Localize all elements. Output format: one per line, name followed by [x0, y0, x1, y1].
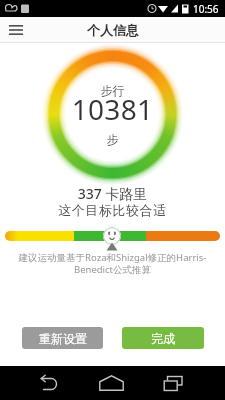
staticText: 步 — [0, 132, 225, 147]
staticText: 337 卡路里 — [0, 184, 225, 203]
staticText: 重新设置 — [39, 331, 87, 346]
button[interactable] — [83, 366, 143, 400]
staticText: 这个目标比较合适 — [0, 202, 225, 218]
button[interactable] — [103, 227, 121, 245]
button[interactable] — [4, 18, 28, 42]
button[interactable]: 重新设置 — [22, 327, 103, 349]
staticText: 建议运动量基于Roza和Shizgal修正的Harris- Benedict公式… — [0, 251, 225, 275]
staticText: 完成 — [151, 331, 175, 346]
staticText: 步行 — [0, 83, 225, 98]
staticText: 10:56 — [193, 2, 219, 16]
button[interactable] — [23, 366, 83, 400]
button[interactable] — [143, 366, 203, 400]
button[interactable]: 完成 — [122, 327, 204, 349]
button[interactable] — [5, 231, 220, 241]
staticText: 10381 — [0, 90, 225, 128]
staticText: 个人信息 — [87, 22, 139, 38]
